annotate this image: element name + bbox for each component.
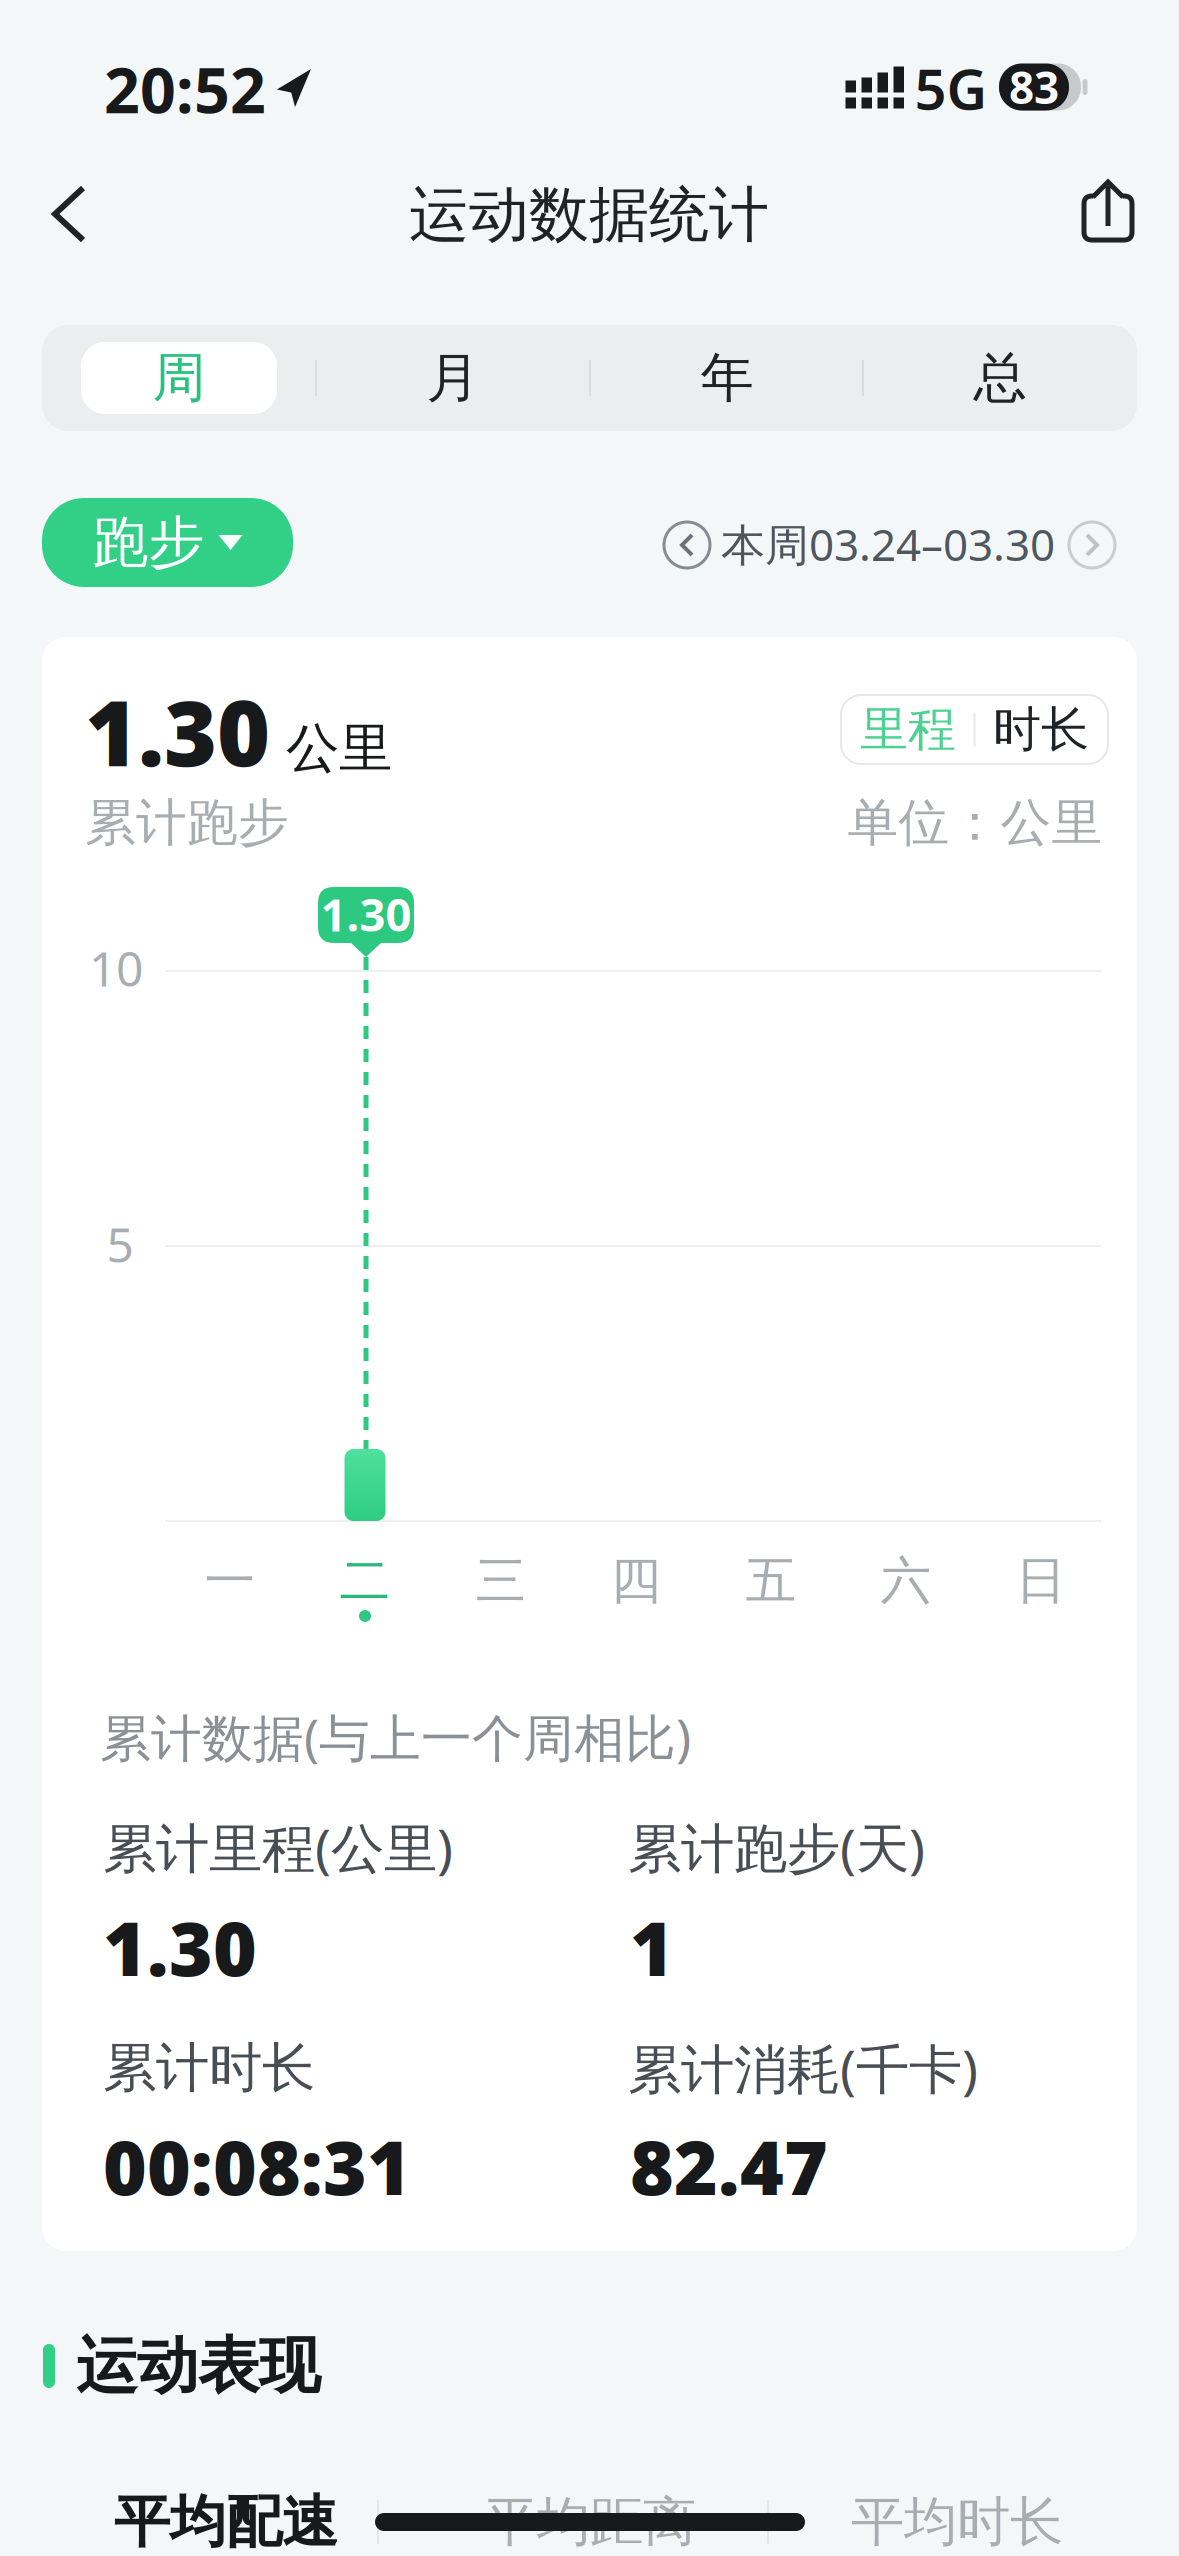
button[interactable]: 时长 — [976, 695, 1106, 764]
staticText: 年 — [700, 345, 753, 411]
button[interactable]: 月 — [353, 333, 553, 423]
staticText: 累计时长 — [103, 2035, 315, 2101]
staticText: 日 — [1015, 1550, 1066, 1612]
staticText: 1.30 — [85, 671, 270, 791]
button[interactable]: 跑步 — [42, 498, 293, 587]
staticText: 本周03.24–03.30 — [721, 515, 1055, 573]
staticText: 00:08:31 — [103, 2116, 411, 2216]
staticText: 总 — [973, 345, 1026, 411]
staticText: 二 — [339, 1550, 390, 1612]
staticText: 三 — [475, 1550, 526, 1612]
staticText: 五 — [745, 1550, 796, 1612]
staticText: 1.30 — [103, 1897, 257, 1997]
staticText: 累计消耗(千卡) — [628, 2033, 978, 2103]
staticText: 六 — [880, 1550, 931, 1612]
button[interactable]: 平均距离 — [440, 2482, 740, 2556]
staticText: 平均配速 — [114, 2488, 338, 2556]
staticText: 四 — [610, 1550, 661, 1612]
staticText: 1.30 — [320, 884, 411, 944]
staticText: 平均距离 — [484, 2489, 696, 2555]
staticText: 10 — [89, 936, 143, 1000]
staticText: 5G — [914, 51, 987, 125]
button[interactable]: 平均配速 — [76, 2482, 376, 2556]
button[interactable]: 里程 — [843, 695, 973, 764]
button[interactable]: Share — [1078, 180, 1138, 244]
staticText: 公里 — [286, 716, 392, 781]
staticText: 跑步 — [92, 508, 204, 577]
staticText: 1 — [630, 1897, 674, 1997]
staticText: 单位：公里 — [847, 792, 1102, 854]
button[interactable]: Back — [35, 168, 103, 260]
button[interactable]: 平均时长 — [807, 2482, 1107, 2556]
button[interactable]: 年 — [627, 333, 827, 423]
staticText: 平均时长 — [851, 2489, 1063, 2555]
staticText: 82.47 — [630, 2116, 828, 2216]
staticText: 累计数据(与上一个周相比) — [100, 1703, 691, 1771]
staticText: 运动数据统计 — [409, 178, 769, 252]
staticText: 时长 — [993, 700, 1089, 759]
staticText: 里程 — [860, 700, 956, 759]
staticText: 累计跑步(天) — [628, 1812, 925, 1882]
button[interactable]: Next week — [1069, 522, 1115, 568]
staticText: 累计里程(公里) — [103, 1812, 453, 1882]
staticText: 5 — [106, 1212, 133, 1276]
button[interactable]: 总 — [900, 333, 1100, 423]
button[interactable]: Previous week — [664, 522, 710, 568]
staticText: 运动表现 — [76, 2328, 320, 2404]
staticText: 累计跑步 — [85, 792, 289, 854]
button[interactable]: 周 — [81, 342, 277, 414]
staticText: 一 — [204, 1550, 255, 1612]
staticText: 周 — [152, 345, 205, 411]
staticText: 20:52 — [104, 47, 266, 131]
staticText: 月 — [426, 345, 479, 411]
staticText: 83 — [1009, 58, 1059, 116]
